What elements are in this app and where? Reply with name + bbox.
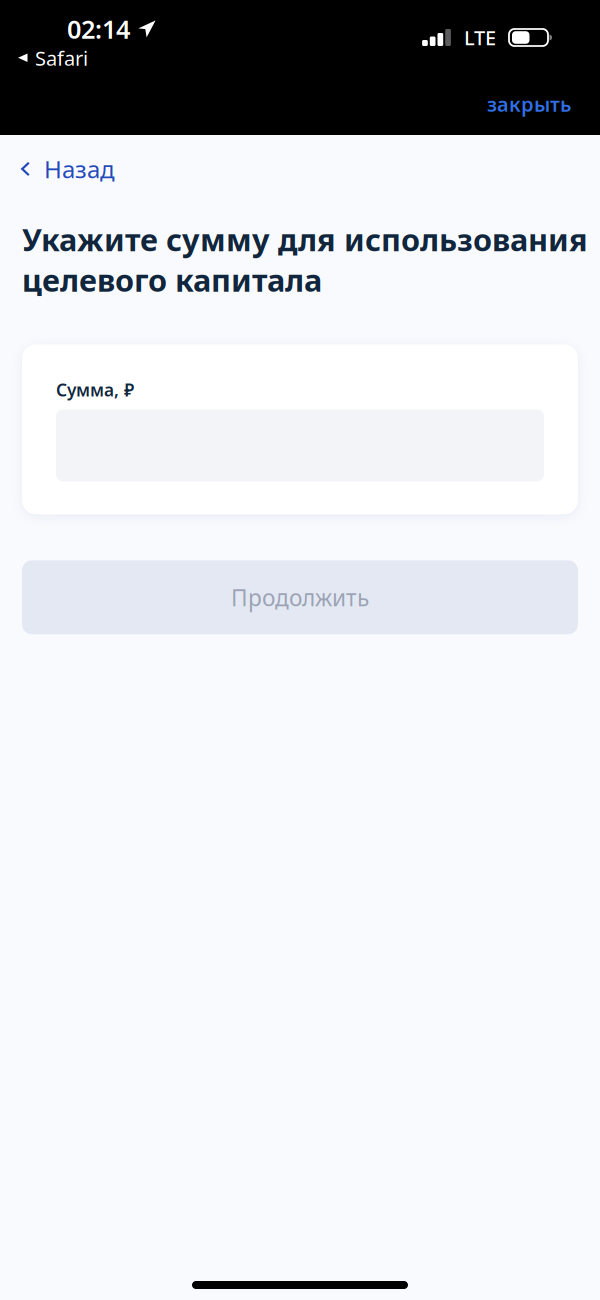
button[interactable]: закрыть [469, 79, 589, 129]
staticText: 02:14 [67, 12, 130, 46]
button[interactable]: Продолжить [22, 560, 578, 634]
staticText: Назад [44, 153, 115, 185]
staticText: Safari [35, 45, 88, 71]
staticText: Укажите сумму для использования целевого… [22, 219, 588, 300]
staticText: закрыть [487, 91, 571, 117]
button[interactable]: Сумма, ₽ [22, 409, 578, 481]
staticText: LTE [464, 24, 496, 51]
staticText: Продолжить [231, 582, 369, 612]
staticText: Сумма, ₽ [56, 378, 134, 401]
button[interactable]: Назад [0, 146, 129, 192]
button[interactable]: Safari [0, 42, 98, 74]
